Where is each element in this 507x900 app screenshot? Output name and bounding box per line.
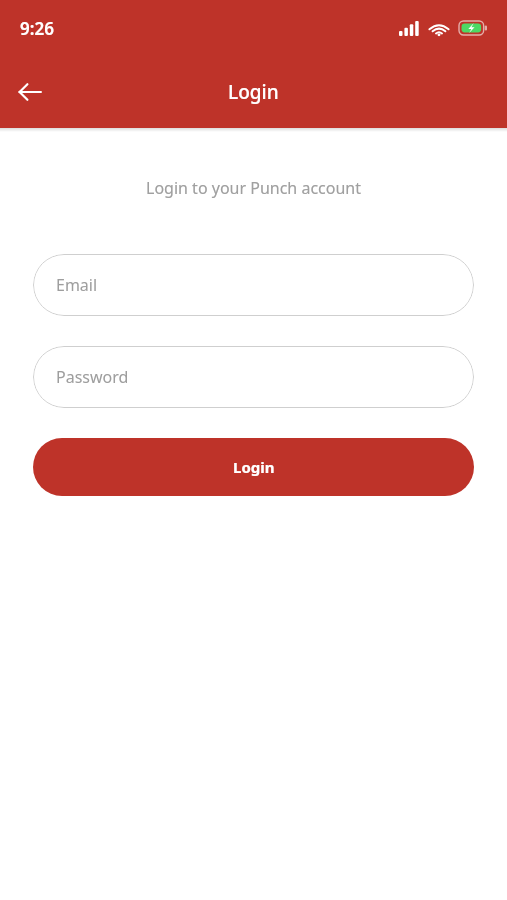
staticText: Login <box>228 79 279 105</box>
button[interactable]: Back <box>6 68 54 116</box>
staticText: Email <box>56 274 98 296</box>
staticText: Login <box>233 457 275 477</box>
staticText: Login to your Punch account <box>33 177 474 199</box>
button[interactable]: Password <box>33 346 474 408</box>
button[interactable]: Email <box>33 254 474 316</box>
staticText: Password <box>56 366 129 388</box>
staticText: 9:26 <box>20 17 54 40</box>
button[interactable]: Login <box>33 438 474 496</box>
